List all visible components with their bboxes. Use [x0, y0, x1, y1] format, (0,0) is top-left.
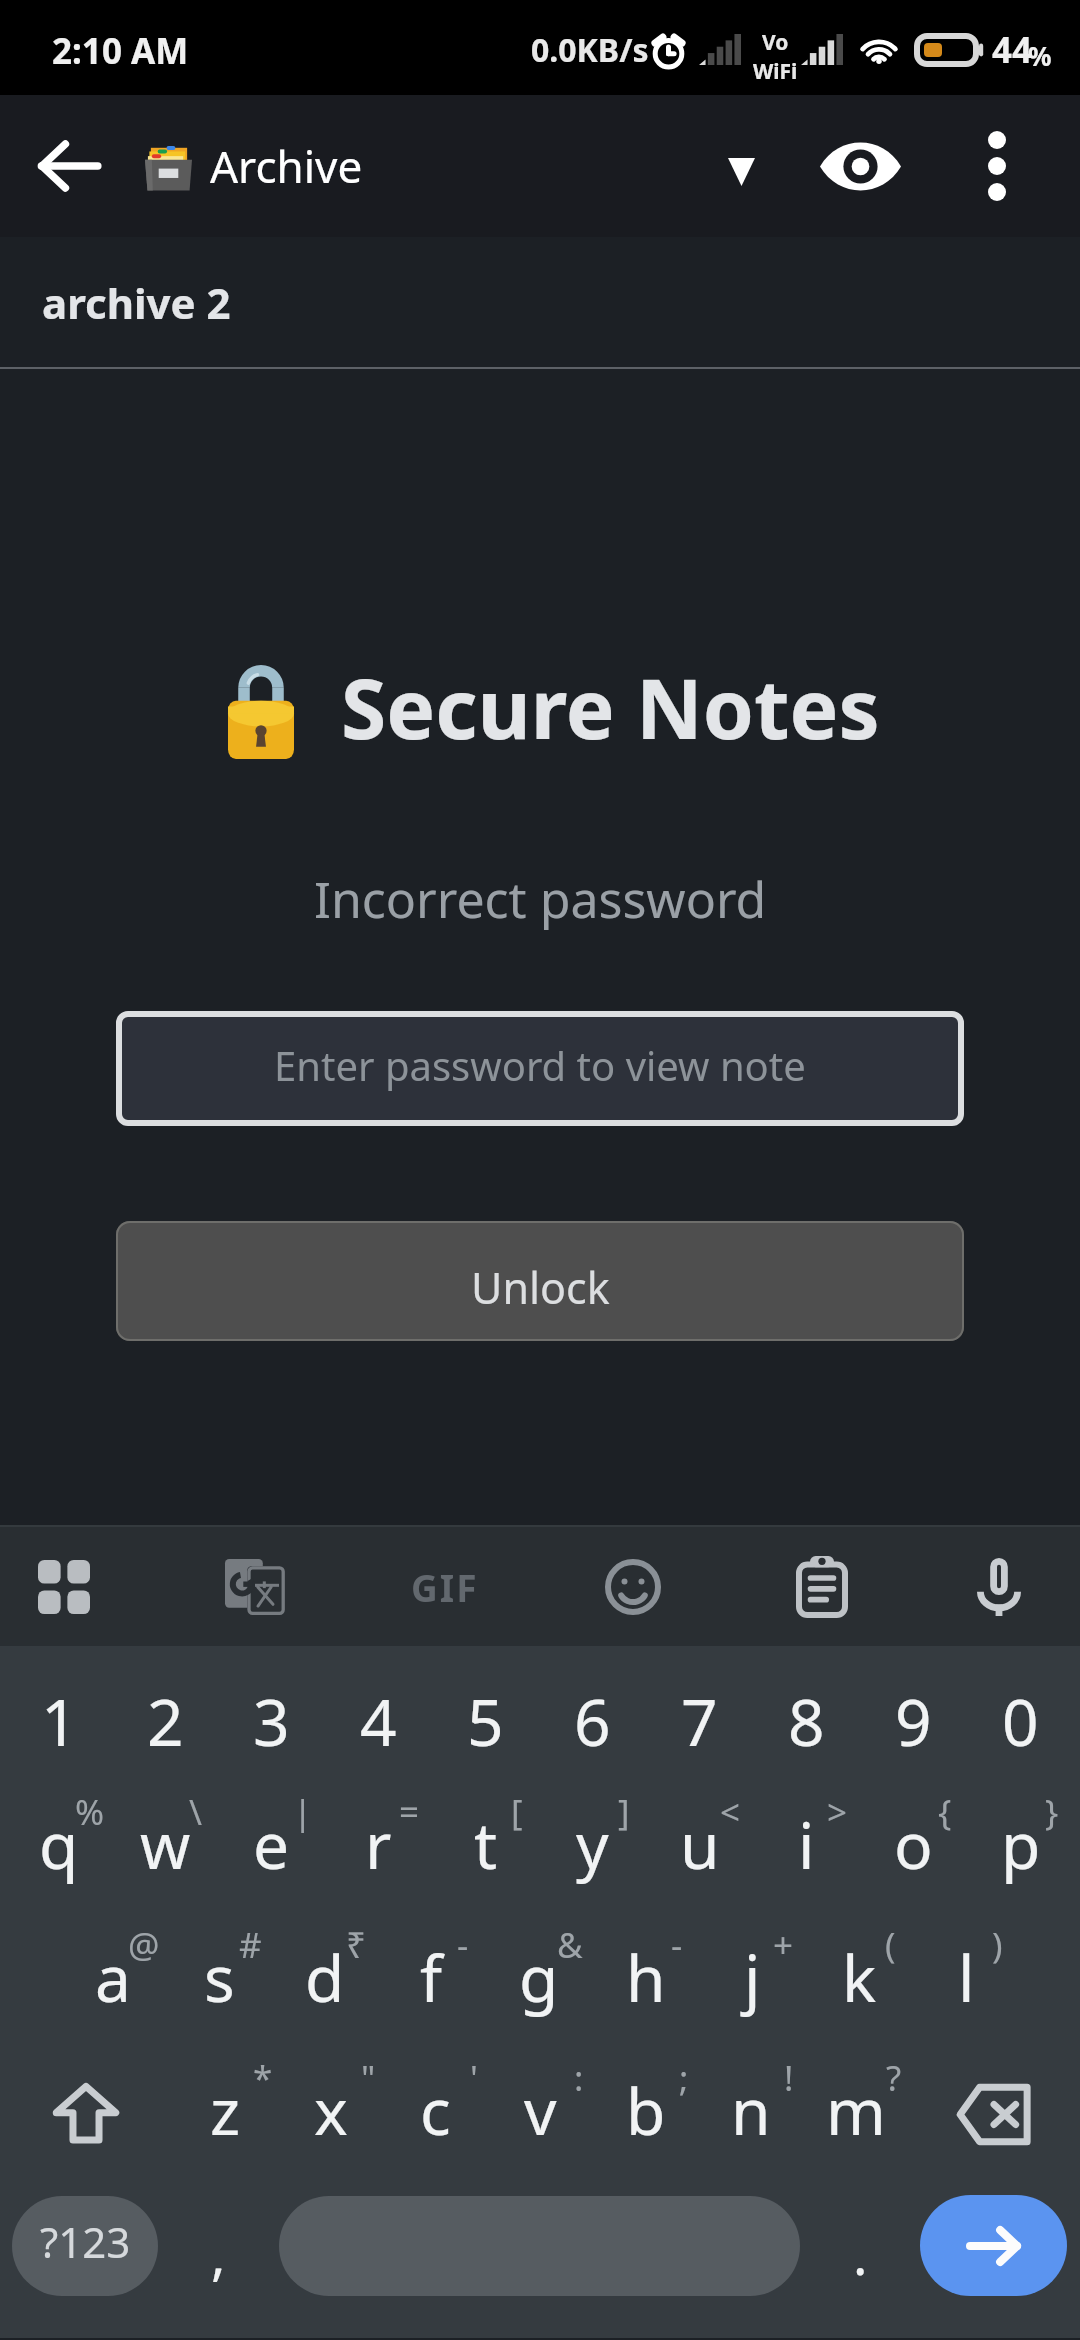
staticText: ] [618, 1788, 630, 1836]
staticText: 4 [360, 1678, 397, 1765]
button[interactable]: w [112, 1779, 218, 1912]
staticText: % [1028, 38, 1052, 73]
staticText: # [239, 1921, 262, 1969]
button[interactable]: o [860, 1779, 967, 1912]
button[interactable]: k [806, 1912, 913, 2045]
staticText: [ [511, 1788, 523, 1836]
button[interactable]: GIF [350, 1527, 540, 1646]
button[interactable]: Keyboard modes [0, 1527, 128, 1646]
button[interactable]: y [539, 1779, 646, 1912]
button[interactable]: t [432, 1779, 539, 1912]
button[interactable]: 5 [432, 1646, 539, 1779]
button[interactable]: u [646, 1779, 753, 1912]
button[interactable]: p [967, 1779, 1074, 1912]
staticText: q [39, 1801, 79, 1888]
button[interactable]: l [913, 1912, 1020, 2045]
button[interactable]: ?123 [12, 2196, 158, 2296]
button[interactable]: 2 [112, 1646, 218, 1779]
staticText: p [1001, 1801, 1041, 1888]
staticText: | [293, 1788, 313, 1836]
staticText: 3 [253, 1678, 290, 1765]
button[interactable]: b [593, 2045, 698, 2178]
staticText: ) [992, 1921, 1003, 1969]
button[interactable]: n [698, 2045, 803, 2178]
staticText: ?123 [40, 2213, 131, 2270]
staticText: { [938, 1788, 952, 1836]
button[interactable]: Shift [0, 2045, 172, 2178]
button[interactable]: Voice input [918, 1527, 1080, 1646]
staticText: Vo [762, 28, 789, 57]
button[interactable]: v [488, 2045, 593, 2178]
button[interactable]: Backspace [908, 2045, 1080, 2178]
staticText: archive 2 [42, 274, 231, 331]
staticText: 2:10 AM [52, 27, 189, 75]
button[interactable]: Unlock [116, 1221, 964, 1341]
button[interactable]: z [172, 2045, 278, 2178]
button[interactable]: x [278, 2045, 383, 2178]
staticText: 0.0KB/s [531, 28, 649, 72]
button[interactable]: Emoji [540, 1527, 726, 1646]
staticText: o [894, 1801, 933, 1888]
staticText: } [1045, 1788, 1059, 1836]
staticText: 8 [788, 1678, 825, 1765]
staticText: d [305, 1934, 345, 2021]
button[interactable]: 3 [218, 1646, 325, 1779]
staticText: b [626, 2067, 666, 2154]
button[interactable]: a [60, 1912, 166, 2045]
staticText: u [680, 1801, 720, 1888]
staticText: n [731, 2067, 771, 2154]
button[interactable]: h [592, 1912, 699, 2045]
button[interactable]: 8 [753, 1646, 860, 1779]
staticText: < [720, 1788, 741, 1836]
button[interactable]: Enter password to view note [116, 1011, 964, 1126]
button[interactable]: 1 [6, 1646, 112, 1779]
button[interactable]: Preview note [801, 95, 919, 237]
staticText: m [826, 2067, 886, 2154]
staticText: v [524, 2067, 557, 2154]
staticText: e [253, 1801, 290, 1888]
button[interactable]: Clipboard [726, 1527, 918, 1646]
staticText: c [420, 2067, 451, 2154]
staticText: Incorrect password [314, 865, 767, 933]
button[interactable]: d [272, 1912, 378, 2045]
staticText: 5 [467, 1678, 504, 1765]
button[interactable]: 7 [646, 1646, 753, 1779]
staticText: Unlock [471, 1258, 610, 1317]
button[interactable]: s [166, 1912, 272, 2045]
button[interactable]: 9 [860, 1646, 967, 1779]
button[interactable]: c [383, 2045, 488, 2178]
staticText: x [314, 2067, 348, 2154]
staticText: " [361, 2054, 376, 2102]
button[interactable]: f [378, 1912, 485, 2045]
button[interactable]: 4 [325, 1646, 432, 1779]
button[interactable]: j [699, 1912, 806, 2045]
button[interactable]: e [218, 1779, 325, 1912]
button[interactable]: q [6, 1779, 112, 1912]
staticText: r [365, 1801, 392, 1888]
staticText: j [744, 1934, 761, 2021]
button[interactable]: i [753, 1779, 860, 1912]
button[interactable]: Translate [160, 1527, 350, 1646]
button[interactable]: 0 [967, 1646, 1074, 1779]
staticText: > [827, 1788, 848, 1836]
staticText: ! [784, 2054, 794, 2102]
button[interactable]: g [485, 1912, 592, 2045]
button[interactable]: r [325, 1779, 432, 1912]
staticText: - [671, 1921, 683, 1969]
button[interactable]: Back [0, 95, 140, 237]
button[interactable]: Enter [920, 2195, 1067, 2296]
button[interactable]: archive 2 [0, 237, 1080, 367]
button[interactable]: . [800, 2170, 920, 2321]
staticText: f [420, 1934, 443, 2021]
button[interactable]: Sort order [681, 95, 801, 237]
staticText: a [95, 1934, 131, 2021]
staticText: , [211, 2217, 226, 2291]
button[interactable]: More options [919, 95, 1074, 237]
button[interactable]: , [158, 2170, 279, 2321]
staticText: . [853, 2217, 868, 2291]
staticText: 0 [1002, 1678, 1039, 1765]
button[interactable]: 6 [539, 1646, 646, 1779]
staticText: 2 [147, 1678, 184, 1765]
button[interactable]: m [803, 2045, 908, 2178]
button[interactable]: Space [279, 2196, 800, 2296]
